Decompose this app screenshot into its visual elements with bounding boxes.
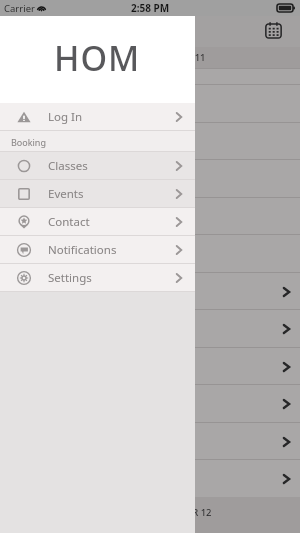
button[interactable] [0,159,300,197]
staticText: Events [48,186,84,202]
button[interactable] [0,309,300,347]
staticText: SEPTEMBER 11 [139,51,206,64]
button[interactable] [0,234,300,272]
staticText: HOM [54,35,141,81]
button[interactable] [0,347,300,385]
button[interactable]: Calendar [265,22,282,39]
button[interactable]: Notifications [0,236,195,264]
button[interactable] [0,384,300,422]
button[interactable]: Events [0,180,195,208]
button[interactable] [0,272,300,310]
button[interactable]: Log In [0,103,195,131]
staticText: Log In [48,109,83,125]
button[interactable] [0,459,300,497]
staticText: 2:58 PM [131,1,170,15]
button[interactable]: Classes [0,152,195,180]
button[interactable]: Contact [0,208,195,236]
button[interactable] [0,197,300,235]
button[interactable] [0,84,300,122]
staticText: Booking [11,136,46,148]
staticText: Contact [48,214,90,230]
button[interactable]: Settings [0,264,195,292]
staticText: SEPTEMBER 12 [145,506,212,519]
button[interactable] [0,122,300,160]
staticText: Notifications [48,242,117,258]
staticText: Carrier [4,2,35,15]
staticText: Settings [48,270,92,286]
button[interactable] [0,422,300,460]
staticText: Classes [48,158,88,174]
